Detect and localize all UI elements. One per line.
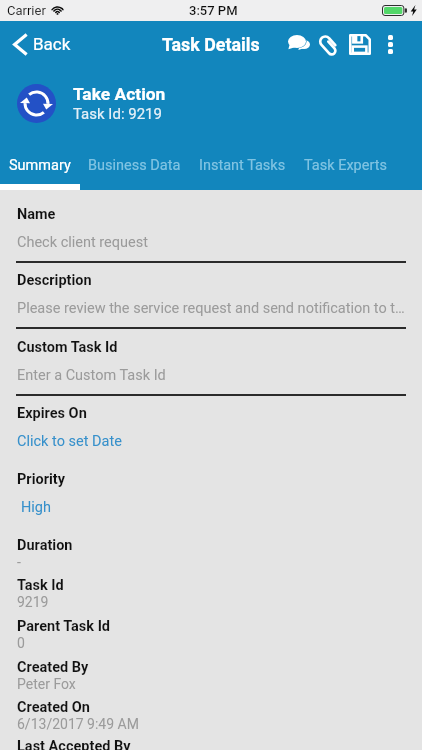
staticText: Last Accepted By [17, 738, 131, 750]
staticText: Business Data [88, 157, 181, 174]
staticText: High [21, 499, 51, 516]
staticText: Task Id [17, 577, 64, 594]
staticText: Task Experts [304, 157, 387, 174]
staticText: - [17, 554, 21, 570]
button[interactable]: Expires On [0, 405, 422, 465]
button[interactable]: Name [0, 206, 422, 266]
button[interactable]: Task Id [0, 577, 422, 615]
button[interactable]: Description [0, 272, 422, 332]
button[interactable]: Instant Tasks [189, 140, 296, 190]
button[interactable]: Summary [0, 140, 80, 190]
button[interactable]: Back [0, 21, 79, 67]
button[interactable]: More options [375, 21, 406, 67]
staticText: Expires On [17, 405, 87, 422]
button[interactable]: Comments [283, 21, 314, 67]
staticText: Task Details [162, 34, 260, 55]
button[interactable]: Custom Task Id [0, 339, 422, 399]
staticText: Check client request [17, 234, 148, 251]
button[interactable]: Priority [0, 471, 422, 531]
staticText: Carrier [7, 3, 46, 18]
staticText: Click to set Date [17, 433, 122, 450]
staticText: Instant Tasks [199, 157, 286, 174]
staticText: Back [33, 34, 71, 54]
staticText: Peter Fox [17, 676, 76, 692]
button[interactable]: Last Accepted By [0, 738, 422, 750]
button[interactable]: Created By [0, 659, 422, 697]
button[interactable]: Created On [0, 699, 422, 737]
staticText: Enter a Custom Task Id [17, 367, 166, 384]
button[interactable]: Duration [0, 537, 422, 575]
staticText: Created By [17, 659, 89, 676]
staticText: Please review the service request and se… [17, 300, 406, 317]
staticText: 6/13/2017 9:49 AM [17, 716, 139, 732]
staticText: Parent Task Id [17, 618, 111, 635]
staticText: Task Id: 9219 [73, 105, 162, 123]
staticText: 3:57 PM [189, 3, 238, 18]
button[interactable]: Parent Task Id [0, 618, 422, 656]
staticText: Created On [17, 699, 90, 716]
staticText: 9219 [17, 594, 49, 610]
staticText: Name [17, 206, 56, 223]
button[interactable]: Business Data [80, 140, 189, 190]
button[interactable]: Task Experts [296, 140, 394, 190]
button[interactable]: Attachments [313, 21, 344, 67]
staticText: Description [17, 272, 92, 289]
staticText: Priority [17, 471, 66, 488]
staticText: Take Action [73, 84, 166, 104]
staticText: Summary [9, 157, 71, 174]
staticText: 0 [17, 635, 25, 651]
staticText: Custom Task Id [17, 339, 118, 356]
button[interactable]: Save [344, 21, 375, 67]
staticText: Duration [17, 537, 73, 554]
